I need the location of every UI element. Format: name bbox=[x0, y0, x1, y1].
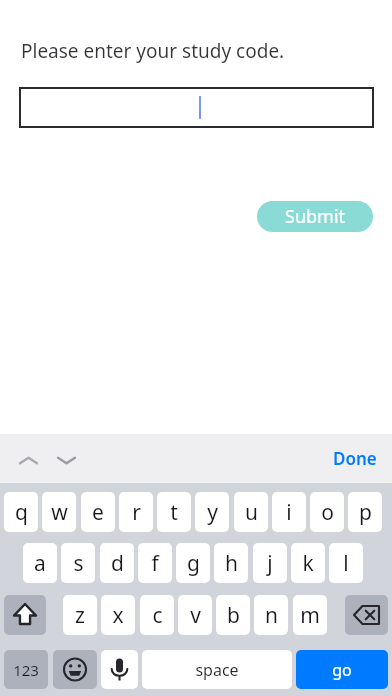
button[interactable]: e bbox=[81, 492, 115, 532]
button[interactable]: z bbox=[63, 595, 97, 635]
staticText: s bbox=[73, 549, 84, 578]
staticText: g bbox=[187, 549, 200, 578]
staticText: e bbox=[92, 498, 104, 527]
button[interactable]: p bbox=[348, 492, 382, 532]
staticText: p bbox=[359, 498, 372, 527]
button[interactable]: f bbox=[138, 543, 172, 583]
button[interactable]: i bbox=[272, 492, 306, 532]
button[interactable]: 123 bbox=[4, 650, 48, 689]
button[interactable]: b bbox=[216, 595, 250, 635]
staticText: x bbox=[112, 601, 124, 630]
staticText: d bbox=[111, 549, 124, 578]
button[interactable]: Previous field bbox=[14, 446, 42, 474]
staticText: n bbox=[265, 601, 278, 630]
button[interactable]: o bbox=[310, 492, 344, 532]
button[interactable]: l bbox=[329, 543, 363, 583]
staticText: Done bbox=[333, 447, 377, 470]
button[interactable]: j bbox=[253, 543, 287, 583]
staticText: v bbox=[190, 601, 201, 630]
staticText: o bbox=[321, 498, 334, 527]
staticText: j bbox=[267, 549, 273, 578]
button[interactable]: y bbox=[195, 492, 229, 532]
staticText: t bbox=[170, 498, 178, 527]
staticText: Submit bbox=[285, 204, 346, 229]
button[interactable]: s bbox=[61, 543, 95, 583]
staticText: a bbox=[34, 549, 46, 578]
staticText: z bbox=[75, 601, 85, 630]
staticText: go bbox=[332, 659, 352, 681]
button[interactable]: Backspace bbox=[345, 595, 388, 635]
button[interactable]: g bbox=[176, 543, 210, 583]
button[interactable]: n bbox=[254, 595, 288, 635]
staticText: i bbox=[286, 498, 292, 527]
button[interactable]: v bbox=[178, 595, 212, 635]
staticText: y bbox=[207, 498, 218, 527]
button[interactable]: Submit bbox=[257, 201, 373, 232]
staticText: m bbox=[300, 601, 320, 630]
button[interactable]: Shift bbox=[4, 595, 46, 635]
button[interactable]: d bbox=[100, 543, 134, 583]
button[interactable]: m bbox=[293, 595, 327, 635]
button[interactable]: go bbox=[296, 650, 388, 689]
staticText: h bbox=[225, 549, 238, 578]
button[interactable]: Done bbox=[328, 445, 382, 472]
button[interactable]: Next field bbox=[52, 446, 80, 474]
staticText: 123 bbox=[13, 660, 39, 680]
staticText: k bbox=[302, 549, 314, 578]
button[interactable]: t bbox=[157, 492, 191, 532]
button[interactable]: Emoji bbox=[53, 650, 97, 689]
staticText: r bbox=[132, 498, 141, 527]
button[interactable]: w bbox=[42, 492, 76, 532]
staticText: q bbox=[15, 498, 28, 527]
staticText: f bbox=[151, 549, 159, 578]
staticText: b bbox=[227, 601, 240, 630]
button[interactable]: q bbox=[4, 492, 38, 532]
button[interactable]: h bbox=[214, 543, 248, 583]
button[interactable]: space bbox=[142, 650, 292, 689]
button[interactable]: k bbox=[291, 543, 325, 583]
button[interactable] bbox=[19, 87, 374, 128]
button[interactable]: x bbox=[101, 595, 135, 635]
button[interactable]: u bbox=[234, 492, 268, 532]
staticText: u bbox=[245, 498, 258, 527]
button[interactable]: Dictation bbox=[101, 650, 138, 689]
staticText: space bbox=[195, 659, 239, 681]
staticText: l bbox=[343, 549, 349, 578]
button[interactable]: r bbox=[119, 492, 153, 532]
staticText: c bbox=[152, 601, 163, 630]
staticText: w bbox=[51, 498, 68, 527]
button[interactable]: a bbox=[23, 543, 57, 583]
staticText: Please enter your study code. bbox=[21, 38, 285, 64]
button[interactable]: c bbox=[140, 595, 174, 635]
